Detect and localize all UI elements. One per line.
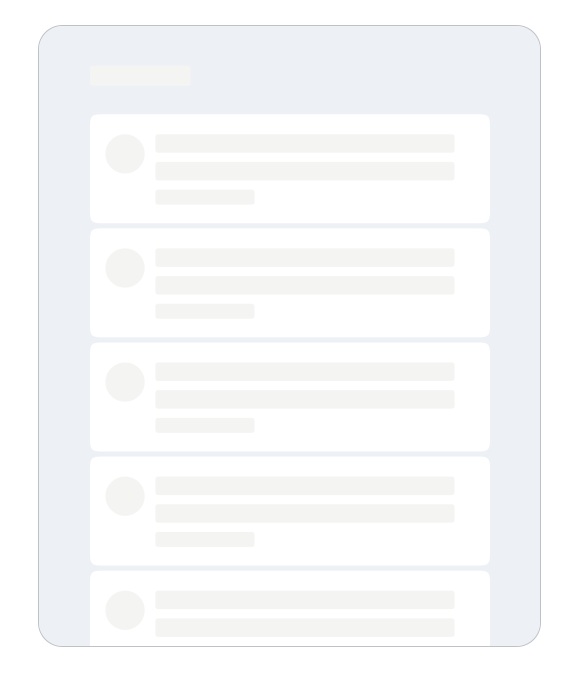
button[interactable]: Loading item (90, 456, 490, 565)
button[interactable]: Loading item (90, 342, 490, 451)
button[interactable]: Loading item (90, 114, 490, 223)
button[interactable]: Loading item (90, 571, 490, 676)
button[interactable]: Loading item (90, 228, 490, 337)
